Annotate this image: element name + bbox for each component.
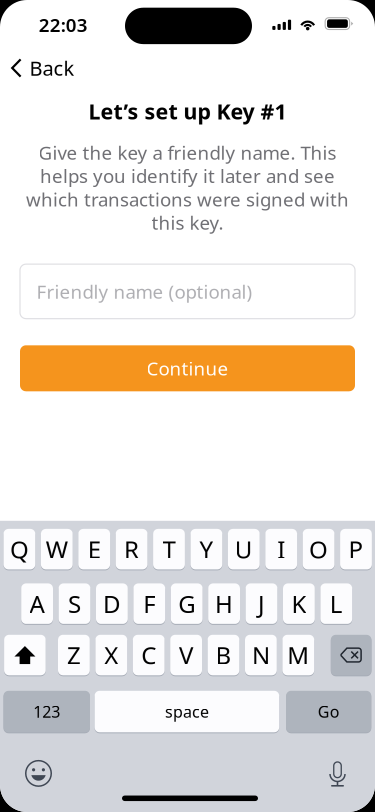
staticText: K [291, 588, 306, 620]
staticText: Z [67, 639, 81, 671]
button[interactable]: I [265, 528, 297, 570]
staticText: D [103, 588, 121, 620]
staticText: W [46, 533, 68, 565]
staticText: X [104, 639, 118, 671]
staticText: Continue [146, 356, 228, 381]
button[interactable]: K [283, 582, 315, 625]
staticText: L [330, 588, 343, 620]
staticText: B [215, 639, 231, 671]
button[interactable]: U [228, 528, 260, 570]
button[interactable]: O [303, 528, 334, 570]
button[interactable]: V [170, 634, 202, 676]
button[interactable]: space [95, 690, 279, 733]
staticText: U [235, 533, 253, 565]
button[interactable]: A [21, 582, 53, 625]
button[interactable]: F [133, 582, 165, 625]
staticText: 22:03 [39, 12, 88, 37]
staticText: H [215, 588, 233, 620]
button[interactable]: B [208, 634, 239, 676]
button[interactable]: 123 [3, 690, 90, 733]
staticText: helps you identify it later and see [40, 163, 335, 188]
staticText: which transactions were signed with [26, 187, 349, 212]
staticText: G [178, 588, 195, 620]
button[interactable]: L [320, 582, 352, 625]
staticText: E [88, 533, 101, 565]
staticText: this key. [151, 210, 223, 235]
button[interactable]: Continue [20, 345, 355, 391]
button[interactable]: M [282, 634, 314, 676]
staticText: J [258, 588, 265, 620]
button[interactable]: G [171, 582, 203, 625]
staticText: Y [199, 533, 213, 565]
staticText: R [124, 533, 139, 565]
button[interactable]: D [96, 582, 128, 625]
staticText: Let’s set up Key #1 [88, 97, 286, 125]
button[interactable]: Y [190, 528, 222, 570]
button[interactable]: Z [58, 634, 90, 676]
staticText: I [277, 533, 285, 565]
staticText: Q [10, 533, 29, 565]
button[interactable]: S [59, 582, 90, 625]
staticText: P [348, 533, 363, 565]
staticText: N [252, 639, 270, 671]
staticText: O [309, 533, 328, 565]
button[interactable]: N [245, 634, 277, 676]
staticText: Give the key a friendly name. This [38, 140, 336, 165]
button[interactable]: T [153, 528, 185, 570]
staticText: F [143, 588, 155, 620]
staticText: A [30, 588, 45, 620]
button[interactable]: X [95, 634, 127, 676]
button[interactable]: C [133, 634, 165, 676]
staticText: M [287, 639, 309, 671]
staticText: S [68, 588, 81, 620]
button[interactable]: E [78, 528, 110, 570]
button[interactable]: Delete [331, 634, 371, 676]
staticText: 123 [33, 701, 60, 722]
staticText: space [165, 701, 209, 722]
staticText: Back [30, 55, 75, 81]
staticText: Friendly name (optional) [36, 279, 252, 304]
button[interactable]: Go [286, 690, 371, 733]
button[interactable]: Shift [4, 634, 46, 676]
button[interactable]: Dictate [320, 756, 354, 790]
staticText: C [141, 639, 156, 671]
button[interactable]: R [116, 528, 147, 570]
staticText: Go [318, 701, 340, 722]
button[interactable]: J [246, 582, 277, 625]
button[interactable]: Q [3, 528, 35, 570]
button[interactable]: P [340, 528, 372, 570]
staticText: T [162, 533, 175, 565]
button[interactable]: Back [0, 46, 90, 90]
button[interactable]: Emoji [21, 756, 55, 790]
button[interactable]: H [208, 582, 240, 625]
staticText: V [179, 639, 193, 671]
button[interactable]: W [41, 528, 73, 570]
